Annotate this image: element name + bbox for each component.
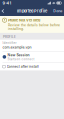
button[interactable]: Done bbox=[51, 6, 64, 16]
staticText: Review the details below before installi… bbox=[8, 23, 60, 31]
staticText: PROFILE bbox=[3, 35, 16, 39]
staticText: Profile Not Verified bbox=[8, 18, 40, 22]
button[interactable]: Back bbox=[0, 6, 6, 16]
staticText: Identifier bbox=[3, 41, 17, 45]
staticText: 9:41 bbox=[2, 1, 11, 5]
staticText: Imported Profile bbox=[17, 9, 47, 13]
staticText: Done bbox=[53, 9, 62, 13]
staticText: New Session bbox=[8, 53, 30, 57]
staticText: com.example.vpn bbox=[3, 45, 32, 49]
button[interactable]: Connect after install bbox=[0, 63, 64, 70]
staticText: Connect after install bbox=[7, 65, 39, 69]
staticText: Starts on connect bbox=[8, 57, 35, 61]
